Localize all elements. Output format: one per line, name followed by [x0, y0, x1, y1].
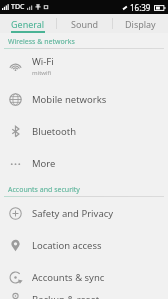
staticText: Mobile networks: [32, 93, 107, 106]
staticText: Accounts & sync: [32, 271, 105, 284]
other: Bluetooth: [9, 125, 22, 138]
staticText: Display: [125, 18, 156, 30]
button[interactable]: Sound: [57, 14, 112, 33]
button[interactable]: General: [0, 14, 56, 33]
staticText: Wireless & networks: [8, 37, 75, 47]
other: More: [9, 157, 22, 170]
button[interactable]: Display: [113, 14, 168, 33]
staticText: Sound: [71, 18, 99, 30]
staticText: Accounts and security: [8, 185, 80, 195]
button[interactable]: Location access: [0, 229, 168, 261]
other: Location access: [9, 239, 22, 252]
other: Mobile networks: [9, 93, 22, 106]
staticText: Wi-Fi: [32, 55, 54, 68]
button[interactable]: More: [0, 147, 168, 179]
button[interactable]: Backup & reset: [0, 293, 168, 299]
staticText: Safety and Privacy: [32, 207, 114, 220]
staticText: General: [11, 18, 45, 30]
staticText: TDC: [11, 2, 25, 12]
staticText: Bluetooth: [32, 125, 77, 138]
button[interactable]: Wi-Fi: [0, 49, 168, 83]
staticText: Location access: [32, 239, 102, 252]
other: Safety and Privacy: [9, 207, 22, 220]
staticText: 16:39: [130, 2, 151, 13]
button[interactable]: Accounts & sync: [0, 261, 168, 293]
button[interactable]: Safety and Privacy: [0, 197, 168, 229]
other: Accounts & sync: [9, 271, 22, 284]
staticText: mitwifi: [32, 69, 52, 77]
other: Backup & reset: [9, 293, 22, 299]
staticText: Backup & reset: [32, 293, 100, 299]
button[interactable]: Bluetooth: [0, 115, 168, 147]
other: Wi-Fi: [9, 60, 22, 73]
staticText: More: [32, 157, 56, 170]
button[interactable]: Mobile networks: [0, 83, 168, 115]
